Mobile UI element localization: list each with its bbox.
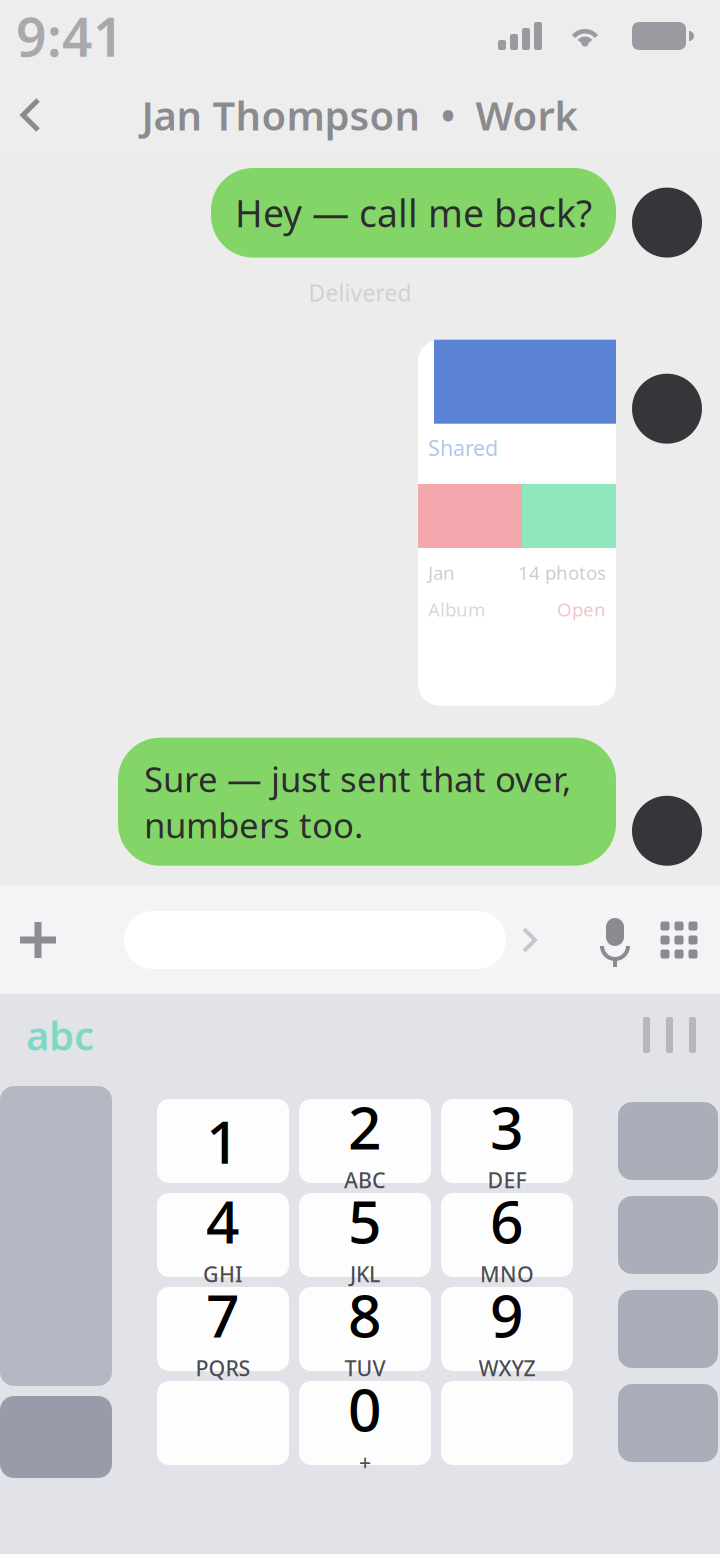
- staticText: 9: [490, 1276, 524, 1354]
- staticText: 2: [348, 1088, 382, 1166]
- button[interactable]: 4: [157, 1193, 289, 1277]
- staticText: Shared: [428, 434, 498, 462]
- button[interactable]: Record audio: [596, 914, 634, 966]
- staticText: +: [359, 1448, 371, 1476]
- staticText: Jan: [428, 560, 455, 585]
- button[interactable]: 7: [157, 1287, 289, 1371]
- staticText: Delivered: [308, 278, 411, 308]
- button[interactable]: 6: [441, 1193, 573, 1277]
- button[interactable]: Apps: [656, 917, 702, 963]
- staticText: WXYZ: [478, 1354, 535, 1382]
- button[interactable]: 0: [299, 1381, 431, 1465]
- button[interactable]: 3: [441, 1099, 573, 1183]
- staticText: PQRS: [195, 1354, 250, 1382]
- staticText: Sure — just sent that over, numbers too.: [144, 756, 571, 848]
- staticText: abc: [26, 1008, 94, 1061]
- button[interactable]: Send: [506, 895, 552, 985]
- staticText: ABC: [344, 1166, 386, 1194]
- button[interactable]: 1: [157, 1099, 289, 1183]
- button[interactable]: 5: [299, 1193, 431, 1277]
- button[interactable]: 2: [299, 1099, 431, 1183]
- staticText: GHI: [203, 1260, 243, 1288]
- staticText: 9:41: [16, 1, 124, 71]
- button[interactable]: Add attachment: [0, 892, 124, 988]
- staticText: Hey — call me back?: [235, 188, 592, 238]
- staticText: 7: [206, 1276, 240, 1354]
- staticText: MNO: [480, 1260, 534, 1288]
- staticText: 4: [206, 1182, 240, 1260]
- staticText: Album: [428, 597, 485, 622]
- button[interactable]: Back: [0, 75, 58, 155]
- staticText: 6: [490, 1182, 524, 1260]
- staticText: 1: [206, 1102, 240, 1180]
- staticText: Jan Thompson • Work: [141, 88, 578, 141]
- staticText: 14 photos: [518, 560, 606, 585]
- staticText: JKL: [350, 1260, 380, 1288]
- button[interactable]: 9: [441, 1287, 573, 1371]
- staticText: DEF: [487, 1166, 526, 1194]
- staticText: TUV: [344, 1354, 385, 1382]
- staticText: 5: [348, 1182, 382, 1260]
- staticText: 8: [348, 1276, 382, 1354]
- staticText: 0: [348, 1370, 382, 1448]
- button[interactable]: 8: [299, 1287, 431, 1371]
- staticText: 3: [490, 1088, 524, 1166]
- staticText: Open: [557, 597, 606, 622]
